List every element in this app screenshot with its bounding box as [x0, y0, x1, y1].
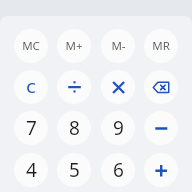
button[interactable]: 5 — [57, 153, 91, 187]
button[interactable]: MR — [144, 29, 178, 63]
staticText: 4 — [26, 157, 37, 183]
button[interactable]: Plus — [144, 153, 178, 187]
staticText: 9 — [113, 115, 124, 141]
staticText: 7 — [26, 115, 37, 141]
button[interactable]: Minus — [144, 111, 178, 145]
button[interactable]: Multiply — [101, 70, 135, 104]
button[interactable]: 9 — [101, 111, 135, 145]
button[interactable]: 7 — [14, 111, 48, 145]
button[interactable]: 8 — [57, 111, 91, 145]
button[interactable]: Backspace — [144, 70, 178, 104]
staticText: M- — [111, 38, 126, 54]
staticText: MR — [152, 38, 170, 54]
button[interactable]: C — [14, 70, 48, 104]
staticText: 6 — [113, 157, 124, 183]
button[interactable]: M- — [101, 29, 135, 63]
button[interactable]: M+ — [57, 29, 91, 63]
staticText: M+ — [65, 38, 83, 54]
button[interactable]: 4 — [14, 153, 48, 187]
staticText: C — [26, 77, 36, 97]
button[interactable]: 6 — [101, 153, 135, 187]
staticText: 8 — [69, 115, 80, 141]
staticText: 5 — [69, 157, 80, 183]
button[interactable]: Divide — [57, 70, 91, 104]
button[interactable]: MC — [14, 29, 48, 63]
staticText: MC — [22, 38, 40, 54]
